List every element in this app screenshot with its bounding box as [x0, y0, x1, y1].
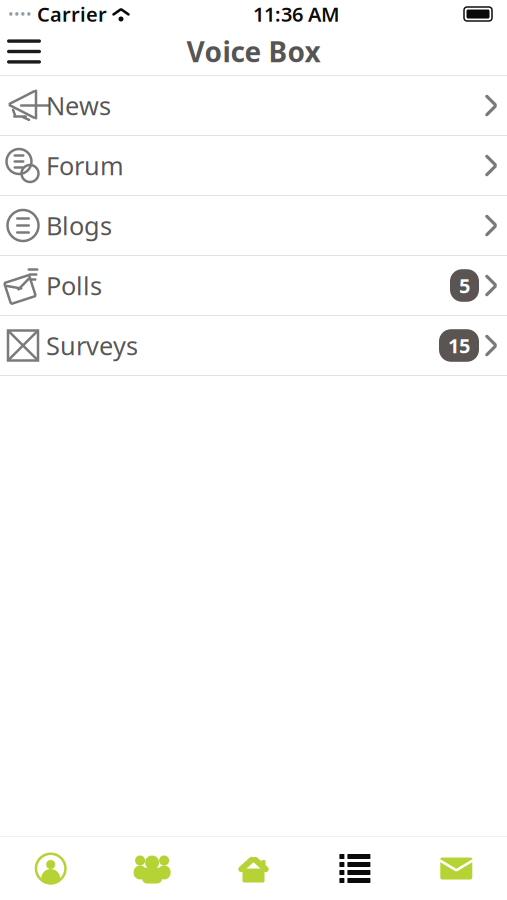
staticText: 5	[459, 272, 470, 299]
staticText: ••••	[8, 4, 32, 24]
button[interactable]: Menu	[0, 29, 48, 73]
button[interactable]: Menu list	[304, 853, 406, 883]
button[interactable]: Messages	[406, 853, 507, 883]
staticText: Forum	[46, 149, 124, 182]
button[interactable]: Polls	[0, 256, 507, 316]
staticText: Voice Box	[186, 33, 320, 70]
button[interactable]: Blogs	[0, 196, 507, 256]
staticText: 15	[448, 332, 470, 359]
staticText: 11:36 AM	[253, 1, 340, 27]
button[interactable]: News	[0, 76, 507, 136]
button[interactable]: Surveys	[0, 316, 507, 376]
staticText: Polls	[46, 269, 102, 302]
button[interactable]: Forum	[0, 136, 507, 196]
staticText: News	[46, 89, 111, 122]
staticText: Carrier	[37, 1, 107, 27]
button[interactable]: Home	[203, 853, 304, 883]
staticText: Surveys	[46, 329, 138, 362]
button[interactable]: Profile	[0, 852, 101, 884]
staticText: Blogs	[46, 209, 112, 242]
button[interactable]: Groups	[101, 853, 203, 883]
